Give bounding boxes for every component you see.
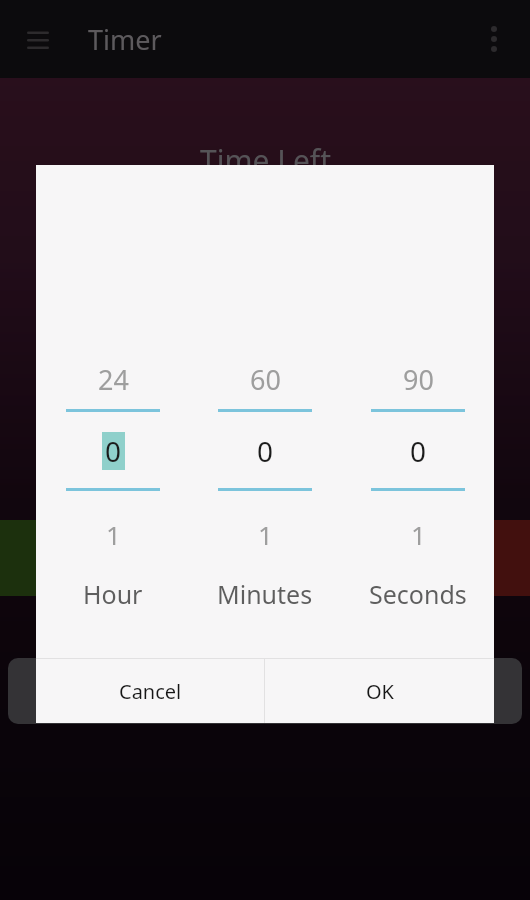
staticText: 0 — [105, 432, 122, 470]
button[interactable]: More options — [470, 15, 518, 63]
staticText: Hour — [83, 577, 143, 611]
button[interactable]: Cancel — [36, 659, 264, 723]
button[interactable]: Stop — [470, 520, 530, 596]
button[interactable]: 90 — [342, 165, 494, 658]
staticText: 1 — [258, 517, 273, 549]
staticText: 1 — [106, 517, 121, 549]
staticText: 0 — [257, 432, 274, 470]
staticText: Cancel — [119, 678, 182, 705]
staticText: 90 — [403, 361, 434, 395]
staticText: 60 — [250, 361, 281, 395]
staticText: Seconds — [369, 577, 467, 611]
button[interactable]: Open navigation menu — [14, 15, 62, 63]
staticText: OK — [366, 678, 394, 705]
staticText: 24 — [98, 361, 129, 395]
staticText: Minutes — [217, 577, 313, 611]
staticText: Timer — [88, 21, 162, 58]
staticText: 0 — [410, 432, 427, 470]
button[interactable]: 24 — [37, 165, 189, 658]
staticText: Time Left — [200, 140, 331, 181]
button[interactable]: 60 — [189, 165, 341, 658]
button[interactable]: OK — [265, 659, 494, 723]
staticText: 1 — [411, 517, 426, 549]
button[interactable]: Start — [0, 520, 60, 596]
